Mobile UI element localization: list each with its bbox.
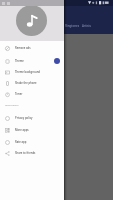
button[interactable]: Remove ads xyxy=(0,42,64,54)
staticText: More apps xyxy=(15,128,29,132)
staticText: Remove ads xyxy=(15,46,31,50)
staticText: Theme xyxy=(15,59,24,63)
staticText: Artists xyxy=(82,24,91,28)
button[interactable]: Theme background xyxy=(0,66,64,78)
button[interactable]: Theme xyxy=(0,55,64,67)
staticText: Timer xyxy=(15,92,23,96)
button[interactable]: More apps xyxy=(0,124,64,136)
button[interactable]: Share to friends xyxy=(0,147,64,159)
button[interactable]: Privacy policy xyxy=(0,112,64,124)
staticText: Ringtones xyxy=(65,24,80,28)
staticText: Privacy policy xyxy=(15,116,33,120)
button[interactable]: Rate app xyxy=(0,136,64,148)
staticText: Rate app xyxy=(15,140,27,144)
staticText: Theme background xyxy=(15,70,40,74)
button[interactable]: Artists xyxy=(77,6,96,34)
staticText: Information xyxy=(5,103,19,106)
button[interactable]: Shake the phone xyxy=(0,77,64,89)
staticText: Shake the phone xyxy=(15,81,37,85)
button[interactable]: Ringtones xyxy=(60,6,85,34)
button[interactable]: Timer xyxy=(0,88,64,100)
staticText: Share to friends xyxy=(15,151,36,155)
